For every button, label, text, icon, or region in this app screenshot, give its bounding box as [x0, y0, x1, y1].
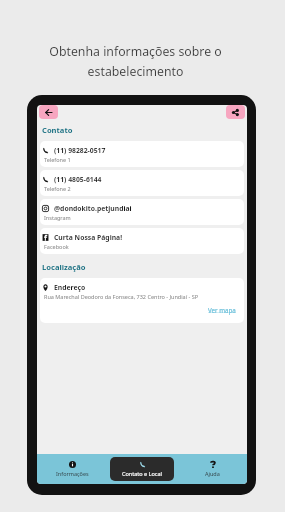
staticText: Endereço: [54, 283, 86, 292]
staticText: Obtenha informações sobre o estabelecime…: [49, 43, 222, 79]
button[interactable]: Informações: [40, 457, 104, 481]
button[interactable]: Curta Nossa Página!: [40, 228, 244, 254]
staticText: Informações: [56, 470, 89, 477]
staticText: Contato: [42, 125, 73, 135]
staticText: Facebook: [44, 243, 69, 250]
button[interactable]: (11) 4805-6144: [40, 170, 244, 196]
staticText: Telefone 2: [44, 185, 71, 192]
staticText: (11) 98282-0517: [54, 146, 106, 155]
button[interactable]: Endereço: [40, 278, 244, 323]
button[interactable]: (11) 98282-0517: [40, 141, 244, 167]
button[interactable]: Ajuda: [180, 457, 244, 481]
staticText: @dondokito.petjundiai: [54, 204, 132, 213]
staticText: Ajuda: [205, 470, 220, 477]
staticText: Ver mapa: [208, 306, 236, 314]
staticText: Instagram: [44, 214, 71, 221]
button[interactable]: Compartilhar: [226, 105, 245, 119]
button[interactable]: @dondokito.petjundiai: [40, 199, 244, 225]
staticText: Curta Nossa Página!: [54, 233, 123, 242]
button[interactable]: Ver mapa: [208, 306, 236, 314]
staticText: Telefone 1: [44, 156, 71, 163]
staticText: (11) 4805-6144: [54, 175, 102, 184]
button[interactable]: Voltar: [39, 105, 58, 119]
staticText: Contato e Local: [122, 470, 162, 477]
staticText: Rua Marechal Deodoro da Fonseca, 732 Cen…: [44, 293, 199, 300]
button[interactable]: Contato e Local: [110, 457, 174, 481]
staticText: Localização: [42, 262, 86, 272]
